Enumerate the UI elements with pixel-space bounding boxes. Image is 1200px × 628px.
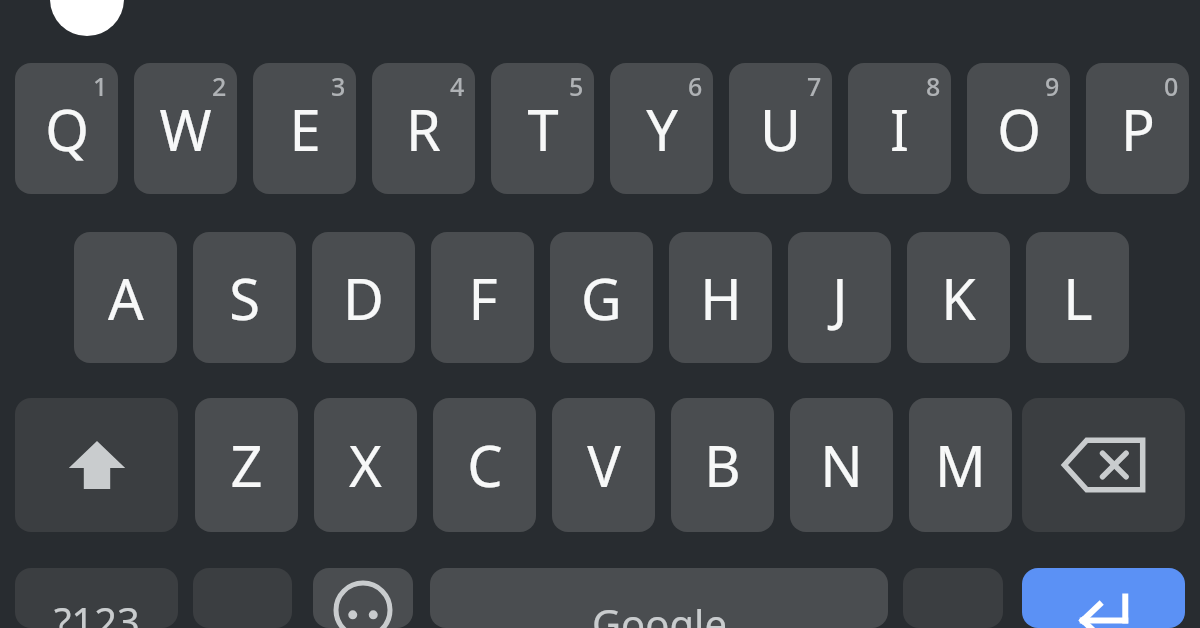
staticText: J	[832, 260, 848, 336]
staticText: M	[935, 427, 986, 503]
button[interactable]: Q	[15, 63, 118, 194]
button[interactable]: L	[1026, 232, 1129, 363]
button[interactable]: B	[671, 398, 774, 532]
button[interactable]: A	[74, 232, 177, 363]
button[interactable]: G	[550, 232, 653, 363]
staticText: L	[1063, 260, 1093, 336]
staticText: Google	[592, 596, 727, 628]
button[interactable]: ?123	[15, 568, 178, 628]
button[interactable]: Shift	[15, 398, 178, 532]
staticText: 5	[569, 69, 584, 103]
staticText: 8	[926, 69, 941, 103]
button[interactable]: U	[729, 63, 832, 194]
button[interactable]: D	[312, 232, 415, 363]
staticText: 9	[1045, 69, 1060, 103]
button[interactable]: Backspace	[1022, 398, 1185, 532]
staticText: P	[1121, 91, 1155, 167]
button[interactable]: C	[433, 398, 536, 532]
staticText: N	[820, 427, 863, 503]
button[interactable]: Enter	[1022, 568, 1185, 628]
staticText: 7	[807, 69, 822, 103]
button[interactable]: X	[314, 398, 417, 532]
button[interactable]: Y	[610, 63, 713, 194]
button[interactable]: W	[134, 63, 237, 194]
staticText: X	[349, 427, 382, 503]
button[interactable]: Space	[430, 568, 888, 628]
staticText: I	[890, 91, 909, 167]
staticText: K	[941, 260, 976, 336]
staticText: 3	[331, 69, 346, 103]
staticText: Z	[230, 427, 263, 503]
button[interactable]: Comma	[193, 568, 292, 628]
staticText: D	[343, 260, 384, 336]
staticText: S	[229, 260, 260, 336]
staticText: O	[997, 91, 1041, 167]
button[interactable]: Period	[903, 568, 1003, 628]
button[interactable]: R	[372, 63, 475, 194]
staticText: R	[406, 91, 441, 167]
staticText: 2	[212, 69, 227, 103]
staticText: 1	[93, 69, 108, 103]
button[interactable]: Z	[195, 398, 298, 532]
button[interactable]: V	[552, 398, 655, 532]
staticText: U	[760, 91, 801, 167]
staticText: C	[467, 427, 503, 503]
button[interactable]: K	[907, 232, 1010, 363]
staticText: 4	[450, 69, 465, 103]
button[interactable]: S	[193, 232, 296, 363]
staticText: B	[704, 427, 741, 503]
staticText: A	[108, 260, 144, 336]
staticText: 0	[1164, 69, 1179, 103]
staticText: 6	[688, 69, 703, 103]
staticText: Q	[45, 91, 89, 167]
button[interactable]: F	[431, 232, 534, 363]
staticText: W	[159, 91, 212, 167]
staticText: V	[587, 427, 621, 503]
button[interactable]: T	[491, 63, 594, 194]
staticText: H	[700, 260, 742, 336]
staticText: E	[289, 91, 321, 167]
button[interactable]: J	[788, 232, 891, 363]
button[interactable]: N	[790, 398, 893, 532]
button[interactable]: O	[967, 63, 1070, 194]
button[interactable]: H	[669, 232, 772, 363]
staticText: G	[581, 260, 622, 336]
staticText: ?123	[54, 594, 140, 628]
button[interactable]: M	[909, 398, 1012, 532]
staticText: Y	[646, 91, 678, 167]
button[interactable]: Emoji	[313, 568, 413, 628]
staticText: F	[468, 260, 498, 336]
button[interactable]: P	[1086, 63, 1189, 194]
button[interactable]: I	[848, 63, 951, 194]
button[interactable]: E	[253, 63, 356, 194]
staticText: T	[527, 91, 559, 167]
